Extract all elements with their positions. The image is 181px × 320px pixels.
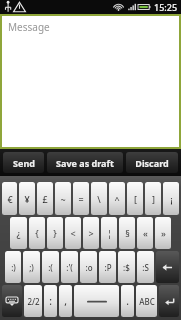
button[interactable]: ] — [145, 182, 161, 215]
button[interactable]: :( — [42, 251, 59, 283]
staticText: :o — [85, 262, 93, 273]
button[interactable]: Save as draft — [47, 152, 123, 173]
staticText: ~ — [60, 193, 66, 205]
button[interactable]: § — [119, 217, 135, 249]
staticText: 15:25 — [154, 1, 178, 13]
staticText: : — [49, 294, 52, 308]
staticText: ¿ — [16, 227, 21, 239]
staticText: ¦ — [107, 227, 112, 239]
button[interactable]: :'( — [61, 251, 78, 283]
staticText: :S — [142, 262, 149, 273]
button[interactable]: ¿ — [10, 217, 27, 249]
staticText: € — [7, 193, 13, 205]
staticText: « — [143, 227, 148, 239]
button[interactable]: :) — [5, 251, 21, 283]
button[interactable]: :$ — [118, 251, 135, 283]
staticText: , — [64, 294, 67, 308]
staticText: > — [88, 227, 94, 239]
button[interactable]: Space — [74, 285, 119, 317]
button[interactable]: ¡ — [163, 182, 179, 215]
button[interactable]: :S — [137, 251, 154, 283]
staticText: } — [53, 227, 57, 239]
button[interactable]: Keyboard settings — [2, 285, 22, 317]
staticText: < — [70, 227, 76, 239]
staticText: = — [78, 193, 84, 205]
staticText: ;) — [29, 262, 34, 273]
button[interactable]: ~ — [55, 182, 71, 215]
button[interactable]: « — [137, 217, 153, 249]
button[interactable]: £ — [37, 182, 53, 215]
button[interactable]: , — [59, 285, 72, 317]
button[interactable]: Send — [3, 152, 44, 173]
button[interactable]: > — [83, 217, 99, 249]
staticText: \ — [97, 193, 101, 205]
button[interactable]: ;) — [23, 251, 40, 283]
button[interactable]: \ — [91, 182, 107, 215]
staticText: » — [161, 227, 166, 239]
staticText: :( — [48, 262, 53, 273]
button[interactable]: . — [121, 285, 134, 317]
staticText: [ — [134, 193, 137, 205]
button[interactable]: ^ — [109, 182, 125, 215]
button[interactable]: » — [155, 217, 171, 249]
button[interactable]: { — [29, 217, 45, 249]
staticText: :) — [11, 262, 16, 273]
button[interactable]: ¦ — [101, 217, 117, 249]
staticText: ^ — [114, 193, 120, 205]
button[interactable]: } — [47, 217, 63, 249]
staticText: Send — [13, 157, 35, 169]
button[interactable]: € — [2, 182, 17, 215]
staticText: 2/2 — [27, 296, 40, 307]
button[interactable]: :o — [80, 251, 97, 283]
staticText: ] — [152, 193, 155, 205]
staticText: Message — [8, 20, 50, 34]
button[interactable]: ¥ — [19, 182, 35, 215]
staticText: £ — [42, 193, 48, 205]
button[interactable]: = — [73, 182, 89, 215]
button[interactable]: ABC — [136, 285, 157, 317]
staticText: ¥ — [24, 193, 30, 205]
staticText: { — [35, 227, 39, 239]
button[interactable]: [ — [127, 182, 143, 215]
staticText: :$ — [123, 262, 130, 273]
button[interactable]: 2/2 — [24, 285, 42, 317]
button[interactable]: < — [65, 217, 81, 249]
staticText: ABC — [139, 296, 155, 307]
button[interactable]: Discard — [126, 152, 178, 173]
staticText: . — [126, 294, 129, 308]
staticText: :'( — [66, 262, 73, 273]
button[interactable]: :P — [99, 251, 116, 283]
staticText: Discard — [135, 157, 169, 169]
button[interactable]: Backspace — [156, 251, 179, 283]
button[interactable]: Message — [2, 16, 179, 147]
button[interactable]: Enter — [159, 285, 179, 317]
button[interactable]: : — [44, 285, 57, 317]
staticText: :P — [104, 262, 112, 273]
staticText: Save as draft — [56, 157, 114, 169]
staticText: § — [125, 227, 130, 239]
staticText: ¡ — [170, 193, 173, 205]
